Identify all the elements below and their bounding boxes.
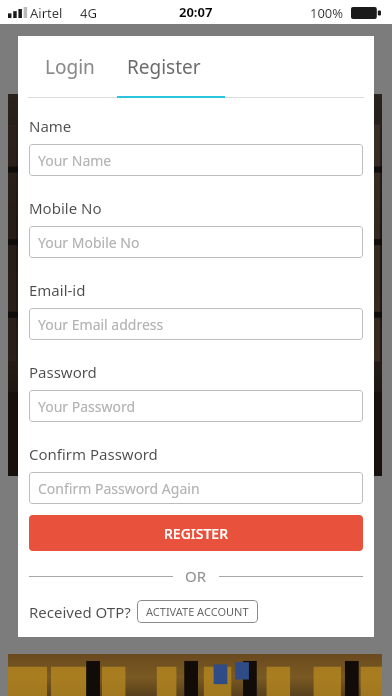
staticText: Name bbox=[29, 116, 72, 136]
button[interactable]: Confirm Password Again bbox=[29, 472, 363, 504]
button[interactable]: REGISTER bbox=[29, 515, 363, 551]
button[interactable]: Your Name bbox=[29, 144, 363, 176]
staticText: Login bbox=[45, 54, 95, 80]
staticText: Password bbox=[29, 362, 97, 382]
staticText: Received OTP? bbox=[29, 602, 131, 622]
staticText: REGISTER bbox=[164, 524, 228, 543]
staticText: Your Mobile No bbox=[38, 233, 140, 252]
staticText: 100% bbox=[310, 4, 344, 22]
staticText: Your Name bbox=[38, 151, 112, 170]
button[interactable]: Your Mobile No bbox=[29, 226, 363, 258]
staticText: Email-id bbox=[29, 280, 86, 300]
button[interactable]: ACTIVATE ACCOUNT bbox=[137, 600, 258, 623]
staticText: Your Email address bbox=[38, 315, 164, 334]
button[interactable]: Your Email address bbox=[29, 308, 363, 340]
button[interactable]: Your Password bbox=[29, 390, 363, 422]
staticText: 20:07 bbox=[179, 3, 213, 21]
staticText: Your Password bbox=[38, 397, 136, 416]
staticText: Register bbox=[127, 54, 201, 80]
staticText: Mobile No bbox=[29, 198, 102, 218]
button[interactable]: Register bbox=[111, 36, 217, 98]
staticText: Confirm Password Again bbox=[38, 479, 200, 498]
staticText: ACTIVATE ACCOUNT bbox=[146, 604, 249, 619]
staticText: 4G bbox=[80, 4, 97, 22]
staticText: OR bbox=[185, 566, 207, 586]
staticText: Confirm Password bbox=[29, 444, 158, 464]
button[interactable]: Login bbox=[29, 36, 111, 98]
staticText: Airtel bbox=[30, 4, 63, 22]
